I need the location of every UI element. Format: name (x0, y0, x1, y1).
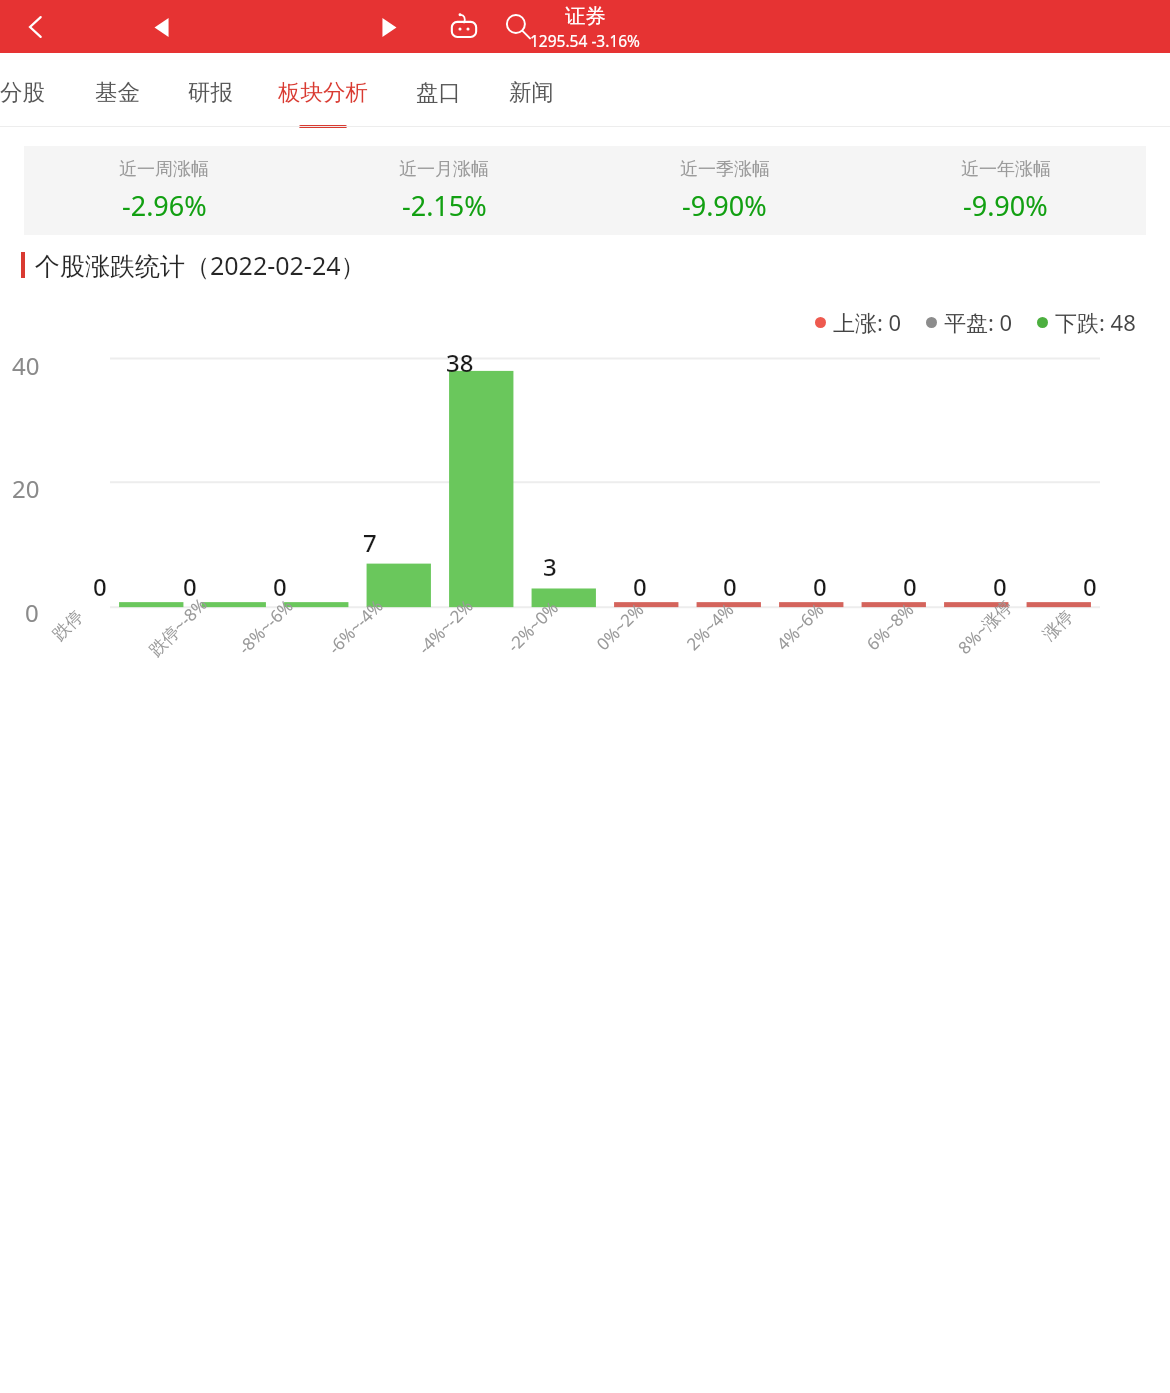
staticText: 0 (273, 570, 287, 603)
staticText: -2%~0% (502, 596, 563, 657)
staticText: 个股涨跌统计（2022-02-24） (35, 248, 366, 282)
staticText: 0 (723, 570, 737, 603)
staticText: 0 (993, 570, 1007, 603)
staticText: 证券 (565, 3, 606, 29)
staticText: 平盘: 0 (944, 307, 1013, 337)
staticText: -2.96% (122, 187, 207, 224)
staticText: 近一年涨幅 (961, 158, 1051, 181)
staticText: 下跌: 48 (1055, 307, 1136, 337)
staticText: 0 (183, 570, 197, 603)
button[interactable]: 近一年涨幅 (865, 146, 1146, 235)
staticText: 3 (543, 550, 557, 583)
staticText: 板块分析 (278, 78, 368, 106)
button[interactable]: 研报 (188, 53, 233, 131)
button[interactable]: Next sector (366, 5, 410, 49)
staticText: 盘口 (416, 78, 461, 106)
staticText: 0 (813, 570, 827, 603)
staticText: 0 (633, 570, 647, 603)
button[interactable]: 基金 (95, 53, 140, 131)
button[interactable]: 近一月涨幅 (304, 146, 584, 235)
button[interactable]: Search (494, 3, 542, 51)
staticText: 近一周涨幅 (119, 158, 209, 181)
staticText: -9.90% (963, 187, 1048, 224)
button[interactable]: 分股 (0, 53, 45, 131)
staticText: 涨停 (1039, 606, 1077, 645)
staticText: 0 (25, 596, 39, 629)
button[interactable]: 盘口 (416, 53, 461, 131)
button[interactable]: 近一季涨幅 (584, 146, 865, 235)
button[interactable]: 板块分析 (278, 53, 368, 131)
staticText: 近一月涨幅 (399, 158, 489, 181)
staticText: 38 (446, 346, 474, 379)
staticText: 研报 (188, 78, 233, 106)
staticText: -6%~-4% (323, 594, 388, 659)
staticText: 0 (93, 570, 107, 603)
staticText: 0 (903, 570, 917, 603)
staticText: 基金 (95, 78, 140, 106)
staticText: 2%~4% (681, 598, 739, 655)
staticText: 4%~6% (771, 598, 829, 655)
staticText: -2.15% (402, 187, 487, 224)
staticText: 1295.54 -3.16% (530, 30, 641, 51)
button[interactable]: AI assistant (440, 3, 488, 51)
staticText: 上涨: 0 (833, 307, 902, 337)
staticText: 7 (363, 526, 377, 559)
button[interactable]: Previous sector (140, 5, 184, 49)
staticText: 6%~8% (861, 598, 919, 655)
staticText: 分股 (0, 78, 45, 106)
staticText: -8%~-6% (233, 594, 298, 659)
button[interactable]: Back (14, 5, 58, 49)
staticText: 0%~2% (591, 598, 649, 655)
staticText: 跌停~-8% (144, 592, 212, 661)
staticText: 20 (12, 472, 40, 505)
staticText: -4%~-2% (413, 594, 478, 659)
staticText: -9.90% (682, 187, 767, 224)
button[interactable]: 新闻 (509, 53, 554, 131)
staticText: 近一季涨幅 (680, 158, 770, 181)
staticText: 新闻 (509, 78, 554, 106)
staticText: 40 (12, 349, 40, 382)
staticText: 跌停 (49, 606, 87, 645)
staticText: 8%~涨停 (953, 594, 1017, 659)
button[interactable]: 近一周涨幅 (24, 146, 304, 235)
staticText: 0 (1083, 570, 1097, 603)
